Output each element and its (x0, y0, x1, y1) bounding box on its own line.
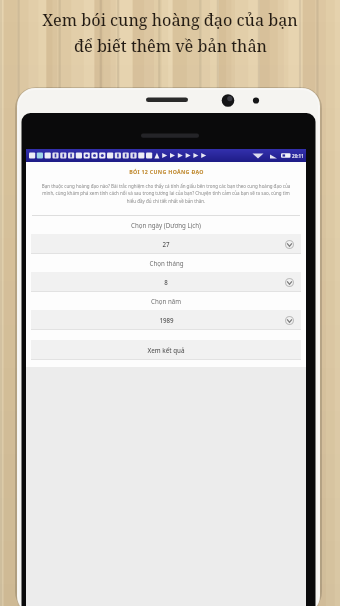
staticText: 1989 (159, 316, 174, 324)
staticText: 8 (164, 278, 168, 286)
staticText: Chọn năm (151, 297, 181, 305)
other: Mở danh sách (285, 316, 294, 325)
staticText: 27 (162, 240, 170, 248)
staticText: Chọn tháng (149, 259, 184, 267)
staticText: Xem kết quả (147, 346, 185, 354)
other: Mở danh sách (285, 240, 294, 249)
button[interactable]: Xem kết quả (31, 340, 301, 360)
staticText: Bạn thuộc cung hoàng đạo nào? Bài trắc n… (41, 183, 291, 204)
staticText: Chọn ngày (Dương Lịch) (131, 221, 201, 229)
staticText: để biết thêm về bản thân (74, 35, 267, 57)
other: Mở danh sách (285, 278, 294, 287)
button[interactable]: 8 (31, 272, 301, 292)
staticText: Xem bói cung hoàng đạo của bạn (42, 9, 298, 31)
button[interactable]: 1989 (31, 310, 301, 330)
button[interactable]: 27 (31, 234, 301, 254)
staticText: BÓI 12 CUNG HOÀNG ĐẠO (129, 168, 204, 175)
staticText: 20:11 (292, 153, 304, 159)
